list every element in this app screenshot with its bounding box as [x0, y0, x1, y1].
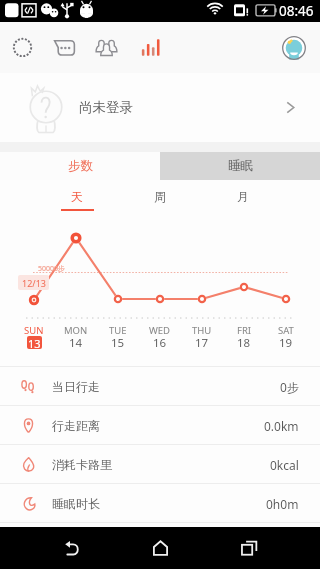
button[interactable]: MON — [55, 318, 97, 366]
button[interactable]: Moments — [1, 22, 43, 73]
staticText: 步数 — [68, 158, 93, 174]
staticText: 当日行走 — [52, 379, 100, 394]
staticText: 0kcal — [270, 457, 299, 473]
button[interactable]: Back — [49, 527, 93, 569]
button[interactable]: 睡眠 — [160, 152, 320, 180]
button[interactable]: THU — [181, 318, 223, 366]
staticText: 19 — [279, 335, 293, 351]
staticText: 尚未登录 — [79, 99, 133, 116]
staticText: 50000步 — [38, 264, 66, 274]
button[interactable]: WED — [139, 318, 181, 366]
staticText: 周 — [154, 189, 166, 204]
staticText: 0h0m — [266, 496, 299, 512]
staticText: 14 — [69, 335, 83, 351]
button[interactable]: 睡眠时长 — [0, 484, 320, 523]
staticText: 0.0km — [264, 418, 299, 434]
staticText: 08:46 — [279, 2, 314, 20]
button[interactable]: 消耗卡路里 — [0, 445, 320, 484]
staticText: THU — [192, 324, 212, 337]
staticText: 13 — [28, 336, 41, 349]
staticText: 睡眠时长 — [52, 496, 100, 511]
staticText: 15 — [111, 335, 125, 351]
staticText: 消耗卡路里 — [52, 457, 112, 472]
button[interactable]: Home — [138, 527, 182, 569]
staticText: 12/13 — [22, 277, 46, 289]
button[interactable]: 行走距离 — [0, 406, 320, 445]
button[interactable]: Statistics — [127, 22, 169, 73]
button[interactable]: SUN — [13, 318, 55, 366]
staticText: SUN — [24, 324, 44, 337]
staticText: 18 — [237, 335, 251, 351]
button[interactable]: FRI — [223, 318, 265, 366]
staticText: FRI — [237, 324, 252, 337]
staticText: 天 — [71, 189, 83, 204]
staticText: SAT — [278, 324, 294, 337]
button[interactable]: 月 — [201, 180, 284, 213]
button[interactable]: 步数 — [0, 152, 160, 180]
staticText: 0步 — [280, 379, 299, 395]
button[interactable]: TUE — [97, 318, 139, 366]
button[interactable]: 当日行走 — [0, 367, 320, 406]
staticText: 行走距离 — [52, 418, 100, 433]
button[interactable]: 天 — [36, 180, 118, 213]
staticText: 17 — [195, 335, 209, 351]
button[interactable]: Profile — [281, 35, 307, 61]
staticText: 16 — [153, 335, 167, 351]
staticText: MON — [64, 324, 88, 337]
staticText: WED — [149, 324, 171, 337]
button[interactable]: SAT — [265, 318, 307, 366]
button[interactable]: 周 — [118, 180, 201, 213]
button[interactable]: 尚未登录 — [0, 73, 320, 142]
staticText: TUE — [109, 324, 127, 337]
button[interactable]: Recents — [227, 527, 271, 569]
button[interactable]: Messages — [43, 22, 85, 73]
button[interactable]: Friends — [85, 22, 127, 73]
staticText: 睡眠 — [228, 158, 253, 174]
staticText: 月 — [237, 189, 249, 204]
